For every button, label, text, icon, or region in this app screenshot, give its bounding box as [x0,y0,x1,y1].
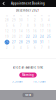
button[interactable]: 4 [17,45,24,50]
staticText: 9 [34,24,36,27]
staticText: 16 [33,29,37,33]
button[interactable]: 5 [3,23,10,28]
staticText: 1 [27,18,29,22]
button[interactable]: 25 [45,34,52,39]
staticText: 15 [26,29,30,33]
staticText: 24 [40,35,44,38]
staticText: 3 [13,46,15,49]
button[interactable]: Morning [19,72,37,77]
staticText: 26 [5,40,9,44]
button[interactable]: 9:30am [6,79,28,84]
staticText: December 2021 [16,9,40,12]
button[interactable]: 27 [10,39,17,45]
staticText: 31 [40,40,44,44]
staticText: Select an available time [12,66,43,69]
staticText: 30 [33,40,37,44]
button[interactable]: 19 [3,34,10,39]
button[interactable]: 7 [38,45,45,50]
staticText: 12 [5,29,9,33]
staticText: 28 [19,40,23,44]
button[interactable]: Back [0,0,7,7]
button[interactable]: 29 [24,39,31,45]
button[interactable]: 16 [31,28,38,34]
staticText: 8 [27,24,29,27]
staticText: Fr [41,15,43,17]
staticText: Appointment Booking [11,2,45,5]
staticText: 3 [41,18,43,22]
staticText: 29 [26,40,30,44]
button[interactable]: 15 [24,28,31,34]
button[interactable]: 13 [10,28,17,34]
button[interactable]: 10 [38,23,45,28]
staticText: 29 [12,18,16,22]
button[interactable]: 28 [17,39,24,45]
staticText: 13 [12,29,16,33]
staticText: Morning [22,73,34,77]
button[interactable]: 9 [31,23,38,28]
staticText: 25 [47,35,51,38]
staticText: 9:30am [12,80,22,83]
button[interactable]: 31 [38,39,45,45]
button[interactable]: 5 [24,45,31,50]
staticText: We [27,15,29,17]
button[interactable]: 7 [17,23,24,28]
staticText: 1 [48,40,50,44]
staticText: 6 [13,24,15,27]
button[interactable]: 1 [45,39,52,45]
button[interactable]: 6 [31,45,38,50]
button[interactable]: Next [22,93,33,97]
staticText: 18 [47,29,51,33]
staticText: 10:15am [33,80,45,83]
button[interactable]: 6 [10,23,17,28]
staticText: 4 [48,18,50,22]
staticText: Mo [13,15,15,17]
button[interactable]: 20 [10,34,17,39]
button[interactable]: 3 [38,17,45,23]
staticText: Sa [48,15,50,17]
button[interactable]: 22 [24,34,31,39]
button[interactable]: 3 [10,45,17,50]
staticText: 5 [6,24,8,27]
staticText: 2 [6,46,8,49]
button[interactable]: 14 [17,28,24,34]
button[interactable]: 2 [3,45,10,50]
staticText: 14 [19,29,23,33]
button[interactable]: 17 [38,28,45,34]
staticText: 4 [20,46,22,49]
button[interactable]: 18 [45,28,52,34]
button[interactable]: 1 [24,17,31,23]
staticText: 8 [48,46,50,49]
staticText: 6 [34,46,36,49]
button[interactable]: 26 [3,39,10,45]
button[interactable]: 2 [31,17,38,23]
staticText: 22 [26,35,30,38]
staticText: 7 [41,46,43,49]
staticText: Th [34,15,36,17]
button[interactable]: 24 [38,34,45,39]
staticText: 30 [19,18,23,22]
button[interactable]: 4 [45,17,52,23]
staticText: 19 [5,35,9,38]
button[interactable]: 28 [3,17,10,23]
staticText: 7 [20,24,22,27]
staticText: 11 [47,24,51,27]
button[interactable]: 29 [10,17,17,23]
staticText: 23 [33,35,37,38]
staticText: 10 [40,24,44,27]
staticText: 20 [12,35,16,38]
button[interactable]: 30 [31,39,38,45]
button[interactable]: 8 [24,23,31,28]
staticText: 21 [19,35,23,38]
button[interactable]: 12 [3,28,10,34]
button[interactable]: 21 [17,34,24,39]
button[interactable]: 23 [31,34,38,39]
staticText: 5 [27,46,29,49]
staticText: Next [25,93,31,97]
staticText: Tu [20,15,22,17]
staticText: 2 [34,18,36,22]
button[interactable]: 10:15am [28,79,50,84]
button[interactable]: 8 [45,45,52,50]
button[interactable]: 11 [45,23,52,28]
button[interactable]: 30 [17,17,24,23]
